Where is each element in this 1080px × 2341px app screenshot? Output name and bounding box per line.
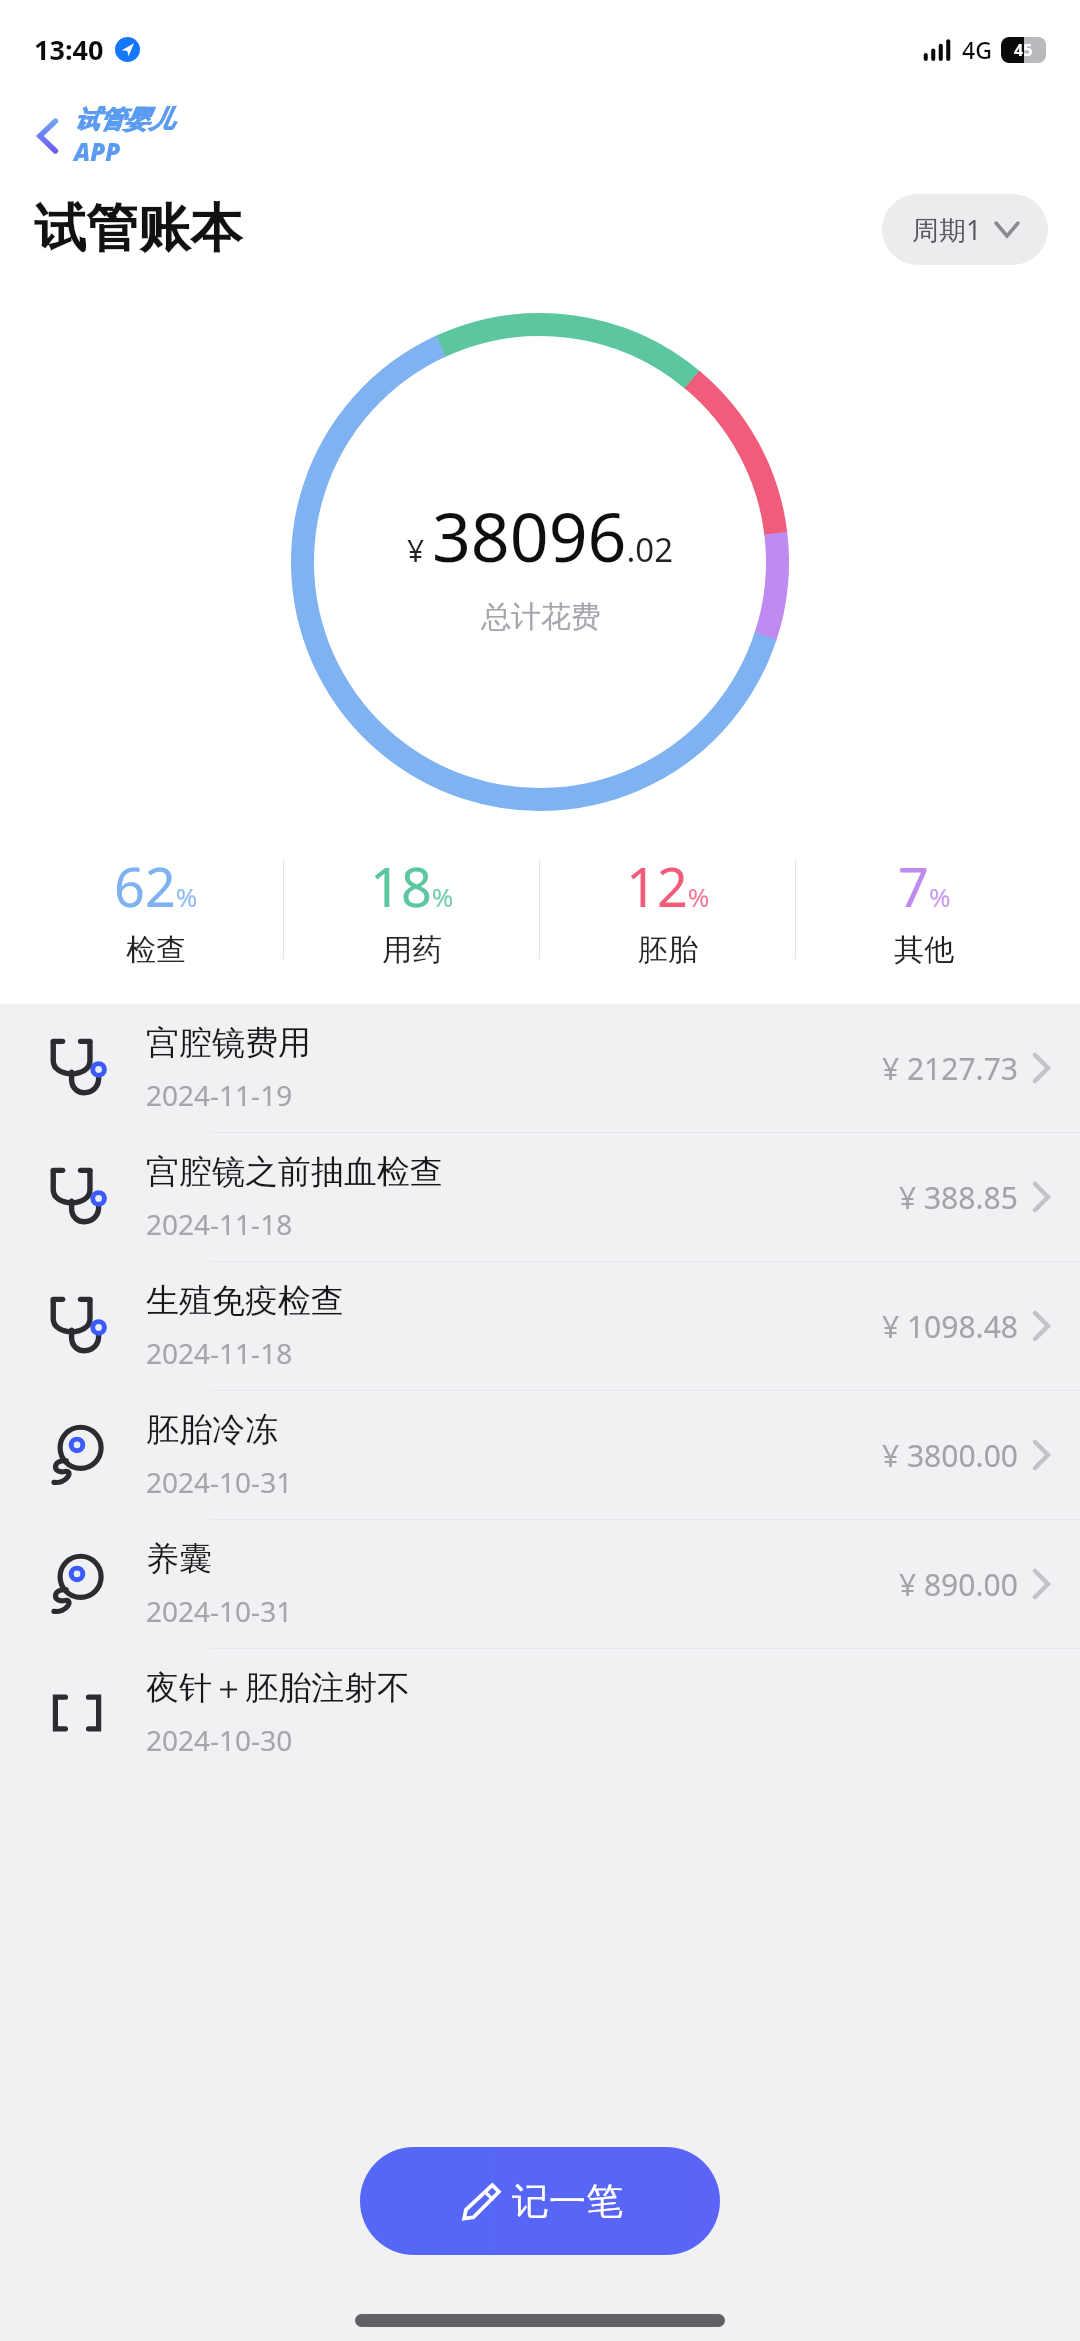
staticText: 宫腔镜费用: [146, 1022, 311, 1064]
staticText: ¥ 890.00: [899, 1564, 1018, 1605]
staticText: 62%: [114, 849, 198, 923]
staticText: ¥ 388.85: [899, 1177, 1018, 1218]
button[interactable]: 养囊: [0, 1520, 1080, 1648]
button[interactable]: 记一笔: [360, 2147, 720, 2255]
staticText: 胚胎: [638, 931, 698, 969]
button[interactable]: 周期1: [882, 194, 1048, 265]
staticText: 4G: [962, 34, 992, 65]
button[interactable]: Back: [24, 112, 72, 160]
staticText: 试管婴儿: [74, 104, 174, 135]
staticText: 总计花费: [481, 598, 601, 636]
staticText: 试管账本: [34, 196, 242, 262]
staticText: 生殖免疫检查: [146, 1280, 344, 1322]
staticText: 记一笔: [512, 2178, 623, 2225]
staticText: 检查: [126, 931, 186, 969]
staticText: 2024-11-18: [146, 1334, 293, 1372]
button[interactable]: 宫腔镜费用: [0, 1004, 1080, 1132]
staticText: 13:40: [34, 31, 104, 68]
staticText: 其他: [894, 931, 954, 969]
button[interactable]: 宫腔镜之前抽血检查: [0, 1133, 1080, 1261]
staticText: ¥ 3800.00: [882, 1435, 1018, 1476]
staticText: 胚胎冷冻: [146, 1409, 278, 1451]
button[interactable]: 生殖免疫检查: [0, 1262, 1080, 1390]
button[interactable]: 胚胎冷冻: [0, 1391, 1080, 1519]
staticText: 45: [1014, 39, 1033, 61]
staticText: 2024-10-30: [146, 1721, 293, 1759]
staticText: APP: [74, 135, 121, 168]
staticText: 夜针＋胚胎注射不: [146, 1667, 410, 1709]
staticText: ¥ 38096.02: [407, 489, 674, 582]
staticText: 12%: [626, 849, 710, 923]
staticText: 宫腔镜之前抽血检查: [146, 1151, 443, 1193]
button[interactable]: 7%: [796, 834, 1052, 984]
staticText: 7%: [898, 849, 951, 923]
button[interactable]: 62%: [28, 834, 284, 984]
button[interactable]: 18%: [284, 834, 540, 984]
staticText: 2024-10-31: [146, 1463, 293, 1501]
staticText: 2024-11-18: [146, 1205, 293, 1243]
staticText: 周期1: [912, 211, 982, 248]
staticText: 2024-11-19: [146, 1076, 293, 1114]
staticText: 18%: [370, 849, 454, 923]
staticText: ¥ 1098.48: [882, 1306, 1018, 1347]
staticText: 2024-10-31: [146, 1592, 293, 1630]
button[interactable]: 12%: [540, 834, 796, 984]
staticText: 养囊: [146, 1538, 212, 1580]
button[interactable]: 夜针＋胚胎注射不: [0, 1649, 1080, 1777]
staticText: ¥ 2127.73: [882, 1048, 1018, 1089]
staticText: 用药: [382, 931, 442, 969]
